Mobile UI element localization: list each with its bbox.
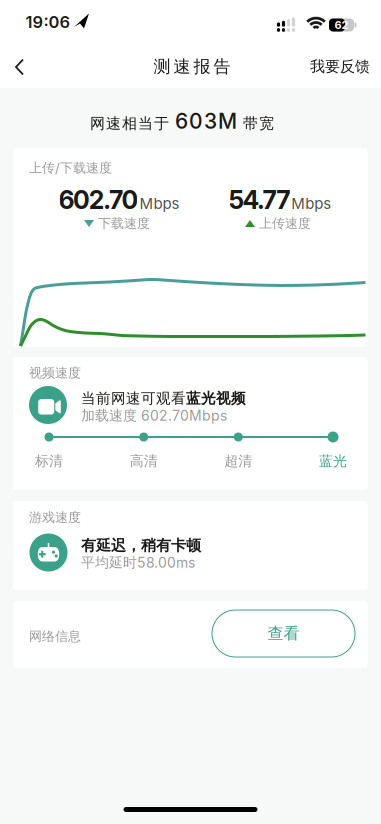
staticText: 下载速度 — [98, 215, 150, 232]
staticText: 测速报告 — [153, 56, 230, 77]
staticText: 蓝光 — [319, 452, 347, 470]
staticText: Mbps — [139, 195, 179, 213]
button[interactable]: 我要反馈 — [310, 57, 370, 76]
staticText: 加载速度 602.70Mbps — [81, 407, 227, 424]
staticText: 游戏速度 — [29, 509, 81, 526]
staticText: 我要反馈 — [310, 57, 370, 76]
staticText: 网速相当于 603M 带宽 — [90, 109, 274, 133]
button[interactable] — [0, 45, 41, 89]
staticText: 当前网速可观看蓝光视频 — [81, 390, 246, 407]
staticText: 高清 — [130, 452, 158, 470]
staticText: 标清 — [35, 452, 63, 470]
staticText: 平均延时58.00ms — [81, 554, 195, 571]
staticText: 超清 — [224, 452, 252, 470]
staticText: 查看 — [267, 623, 299, 644]
staticText: 62 — [334, 18, 348, 32]
staticText: 上传速度 — [259, 215, 311, 232]
staticText: Mbps — [291, 195, 331, 213]
staticText: 网络信息 — [29, 628, 81, 645]
staticText: 602.70 — [58, 185, 138, 215]
staticText: 有延迟，稍有卡顿 — [81, 536, 201, 555]
staticText: 54.77 — [229, 185, 290, 215]
button[interactable]: 查看 — [212, 610, 355, 657]
staticText: 视频速度 — [29, 365, 81, 381]
staticText: 19:06 — [25, 12, 70, 32]
staticText: 上传/下载速度 — [29, 160, 112, 176]
